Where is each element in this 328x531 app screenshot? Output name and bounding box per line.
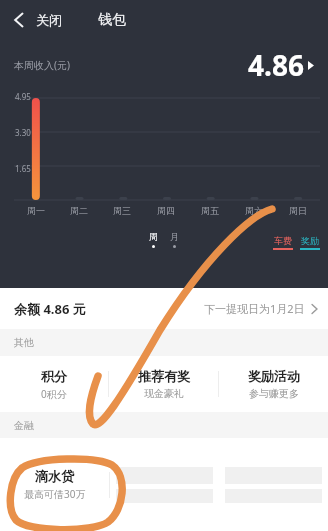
staticText: 周二 — [70, 205, 88, 216]
button[interactable]: 滴水贷 — [0, 438, 109, 531]
button[interactable]: Back, Close — [0, 12, 70, 28]
button[interactable] — [110, 438, 219, 531]
staticText: 钱包 — [98, 11, 126, 29]
button[interactable]: 奖励 — [300, 235, 320, 250]
staticText: 推荐有奖 — [138, 368, 190, 384]
staticText: 关闭 — [36, 12, 62, 28]
staticText: 最高可借30万 — [24, 487, 86, 501]
staticText: 月 — [170, 231, 179, 242]
staticText: 4.95 — [15, 91, 31, 102]
staticText: 4.86 — [248, 46, 304, 84]
staticText: 参与赚更多 — [249, 387, 299, 400]
button[interactable]: 本周收入(元) — [0, 40, 328, 90]
staticText: 周三 — [113, 205, 131, 216]
button[interactable]: 余额 4.86 元 — [0, 288, 328, 329]
button[interactable]: 积分 — [0, 356, 108, 412]
staticText: 余额 4.86 元 — [14, 300, 86, 318]
staticText: 周 — [149, 231, 158, 242]
staticText: 1.65 — [15, 163, 31, 174]
staticText: 下一提现日为1月2日 — [204, 301, 305, 316]
button[interactable]: 周 — [143, 231, 164, 248]
staticText: 现金豪礼 — [144, 387, 184, 400]
staticText: 金融 — [14, 419, 34, 432]
button[interactable]: 月 — [164, 231, 185, 248]
staticText: 其他 — [14, 336, 34, 349]
staticText: 车费 — [274, 235, 292, 246]
staticText: 周一 — [27, 205, 45, 216]
staticText: 周日 — [289, 205, 307, 216]
staticText: 积分 — [41, 368, 67, 384]
button[interactable]: 推荐有奖 — [109, 356, 218, 412]
button[interactable] — [219, 438, 328, 531]
button[interactable]: 车费 — [273, 235, 293, 250]
staticText: 周四 — [157, 205, 175, 216]
staticText: 滴水贷 — [35, 468, 74, 484]
staticText: 周六 — [245, 205, 263, 216]
button[interactable]: 奖励活动 — [219, 356, 328, 412]
staticText: 3.30 — [15, 127, 31, 138]
staticText: 周五 — [201, 205, 219, 216]
staticText: 奖励 — [301, 235, 319, 246]
staticText: 本周收入(元) — [14, 58, 70, 72]
staticText: 奖励活动 — [248, 368, 300, 384]
staticText: 0积分 — [41, 387, 67, 401]
